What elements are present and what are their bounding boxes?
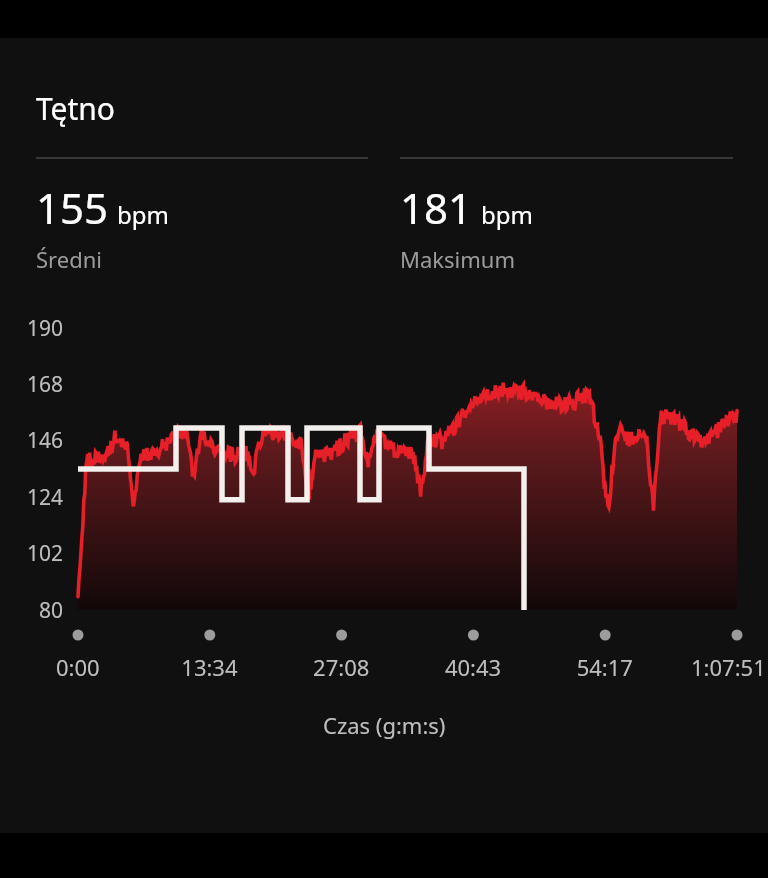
- staticText: 155: [36, 179, 109, 236]
- staticText: bpm: [117, 198, 169, 231]
- staticText: Maksimum: [400, 244, 515, 274]
- staticText: Czas (g:m:s): [323, 710, 446, 740]
- staticText: bpm: [481, 198, 533, 231]
- staticText: Tętno: [36, 88, 116, 129]
- button[interactable]: 181: [400, 179, 733, 274]
- staticText: 181: [400, 179, 473, 236]
- button[interactable]: 155: [36, 179, 368, 274]
- staticText: Średni: [36, 244, 102, 274]
